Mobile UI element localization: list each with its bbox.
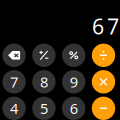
button[interactable]: Delete <box>2 44 26 67</box>
button[interactable]: Percent <box>62 44 85 67</box>
staticText: 8 <box>40 72 48 92</box>
button[interactable]: Minus <box>92 97 115 120</box>
button[interactable]: Plus minus <box>32 44 56 67</box>
button[interactable]: 6 <box>62 97 85 120</box>
button[interactable]: Divide <box>92 44 115 67</box>
button[interactable]: 7 <box>2 70 26 93</box>
staticText: 5 <box>40 99 48 118</box>
staticText: 4 <box>10 99 18 118</box>
button[interactable]: 8 <box>32 70 56 93</box>
staticText: 7 <box>10 72 18 92</box>
button[interactable]: 9 <box>62 70 85 93</box>
button[interactable]: Multiply <box>92 70 115 93</box>
staticText: 9 <box>70 72 78 92</box>
button[interactable]: 4 <box>2 97 26 120</box>
staticText: 67 <box>92 12 119 40</box>
staticText: 6 <box>70 99 78 118</box>
button[interactable]: 5 <box>32 97 56 120</box>
